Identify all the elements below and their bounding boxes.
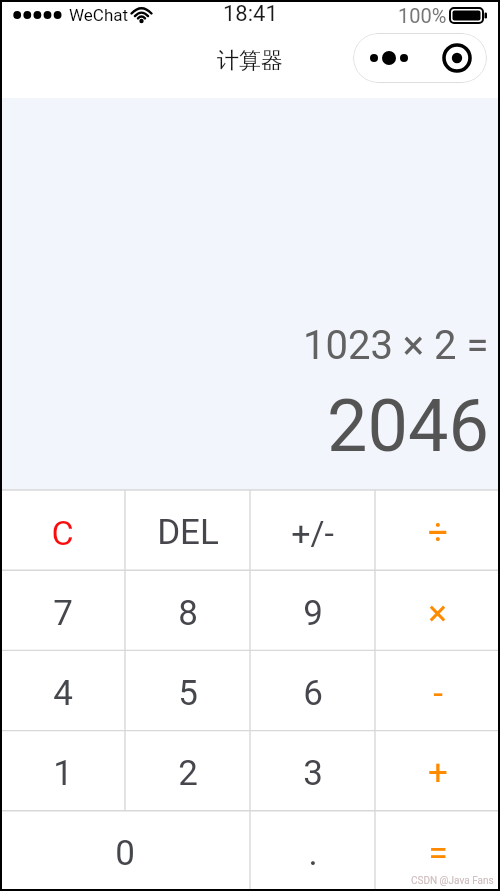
staticText: 计算器: [217, 47, 283, 75]
staticText: CSDN @Java Fans: [411, 875, 494, 887]
staticText: +: [428, 753, 448, 794]
button[interactable]: 7: [0, 571, 125, 651]
staticText: WeChat: [69, 5, 129, 25]
button[interactable]: 9: [250, 571, 375, 651]
button[interactable]: +: [375, 731, 500, 811]
staticText: 2: [178, 753, 198, 794]
staticText: 4: [53, 673, 73, 714]
staticText: +/-: [291, 513, 334, 553]
button[interactable]: +/-: [250, 490, 375, 571]
staticText: .: [308, 833, 318, 874]
staticText: DEL: [157, 512, 219, 553]
staticText: 5: [178, 673, 198, 714]
button[interactable]: -: [375, 651, 500, 731]
staticText: 7: [53, 593, 73, 634]
button[interactable]: 1: [0, 731, 125, 811]
staticText: 1023 × 2 =: [303, 322, 489, 369]
staticText: 9: [303, 593, 323, 634]
button[interactable]: ×: [375, 571, 500, 651]
button[interactable]: =: [375, 811, 500, 891]
button[interactable]: 2: [125, 731, 250, 811]
button[interactable]: 8: [125, 571, 250, 651]
button[interactable]: ÷: [375, 490, 500, 571]
staticText: ÷: [428, 512, 448, 553]
button[interactable]: C: [0, 490, 125, 571]
button[interactable]: .: [250, 811, 375, 891]
staticText: 0: [115, 833, 135, 874]
staticText: 100%: [398, 4, 447, 27]
staticText: -: [433, 673, 443, 714]
button[interactable]: DEL: [125, 490, 250, 571]
button[interactable]: [353, 33, 487, 83]
staticText: ×: [428, 593, 447, 634]
staticText: 1: [53, 753, 73, 794]
button[interactable]: 4: [0, 651, 125, 731]
staticText: 18:41: [223, 1, 278, 27]
staticText: =: [428, 833, 448, 874]
staticText: 6: [303, 673, 323, 714]
button[interactable]: 6: [250, 651, 375, 731]
button[interactable]: 3: [250, 731, 375, 811]
staticText: 3: [303, 753, 323, 794]
staticText: 8: [178, 593, 198, 634]
staticText: 2046: [327, 384, 489, 468]
button[interactable]: 0: [0, 811, 250, 891]
button[interactable]: 5: [125, 651, 250, 731]
staticText: C: [51, 513, 74, 553]
